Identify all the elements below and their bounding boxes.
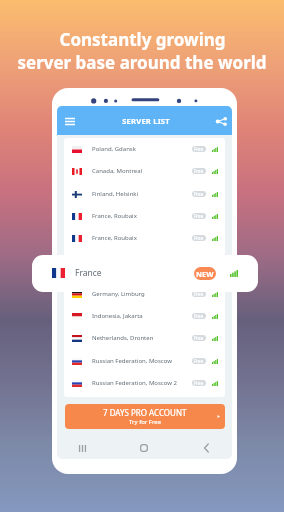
staticText: France, Roubaix — [92, 212, 137, 220]
staticText: Free — [194, 213, 204, 219]
staticText: Russian Federation, Moscow 2 — [92, 379, 177, 387]
button[interactable]: Netherlands, Dronten — [72, 327, 218, 349]
staticText: Try for Free — [129, 418, 162, 426]
button[interactable]: France — [32, 255, 258, 292]
button[interactable]: Canada, Montreal — [72, 160, 218, 182]
button[interactable]: Share — [213, 114, 227, 128]
button[interactable]: Finland, Helsinki — [72, 183, 218, 205]
staticText: Free — [194, 291, 204, 297]
button[interactable]: Menu — [65, 114, 79, 128]
staticText: Constantly growing — [59, 28, 226, 51]
button[interactable]: Germany, Limburg — [72, 283, 218, 305]
staticText: Free — [194, 313, 204, 319]
staticText: Indonesia, Jakarta — [92, 312, 143, 320]
staticText: 7 DAYS PRO ACCOUNT — [103, 407, 187, 418]
staticText: Free — [194, 235, 204, 241]
staticText: Free — [194, 146, 204, 152]
staticText: France — [75, 267, 102, 279]
staticText: Netherlands, Dronten — [92, 334, 154, 342]
staticText: Free — [194, 168, 204, 174]
staticText: Russian Federation, Moscow — [92, 357, 172, 365]
staticText: Germany, Limburg — [92, 290, 145, 298]
staticText: Canada, Montreal — [92, 167, 143, 175]
staticText: France, Roubaix — [92, 234, 137, 242]
staticText: Free — [194, 358, 204, 364]
staticText: SERVER LIST — [79, 116, 213, 126]
button[interactable]: Indonesia, Jakarta — [72, 305, 218, 327]
button[interactable]: 7 DAYS PRO ACCOUNT — [65, 404, 225, 429]
button[interactable]: Poland, Gdansk — [72, 138, 218, 160]
staticText: Free — [194, 335, 204, 341]
staticText: server base around the world — [17, 51, 267, 74]
button[interactable]: Recents — [52, 440, 113, 456]
button[interactable]: Russian Federation, Moscow — [72, 350, 218, 372]
staticText: Poland, Gdansk — [92, 145, 136, 153]
button[interactable]: France, Roubaix — [72, 205, 218, 227]
staticText: Finland, Helsinki — [92, 190, 139, 198]
staticText: NEW — [196, 269, 214, 279]
button[interactable]: France, Roubaix — [72, 227, 218, 249]
staticText: Free — [194, 191, 204, 197]
button[interactable]: Home — [113, 440, 175, 456]
staticText: Free — [194, 380, 204, 386]
button[interactable]: Russian Federation, Moscow 2 — [72, 372, 218, 394]
button[interactable]: Back — [175, 440, 237, 456]
